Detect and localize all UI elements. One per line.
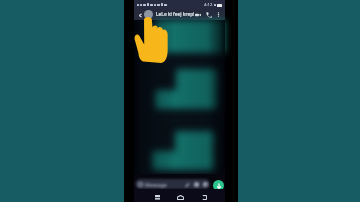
button[interactable]: Message	[135, 179, 210, 189]
staticText: 4:12	[204, 2, 213, 8]
staticText: Message	[145, 181, 167, 188]
button[interactable]: Back	[198, 191, 210, 202]
staticText: $	[195, 182, 198, 187]
button[interactable]: Recents	[151, 191, 163, 202]
button[interactable]: Back	[136, 11, 144, 19]
button[interactable]: Download	[213, 180, 224, 191]
button[interactable]: More options	[215, 11, 222, 18]
button[interactable]: Video call	[194, 11, 202, 19]
staticText: LeLe ki feej krepl...	[156, 11, 194, 18]
button[interactable]: Call	[205, 11, 213, 19]
button[interactable]: Home	[174, 191, 186, 202]
